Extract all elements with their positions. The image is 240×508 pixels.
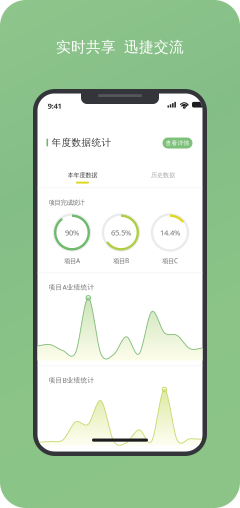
staticText: 本年度数据 [67,171,97,179]
staticText: 实时共享 迅捷交流 [56,38,184,56]
staticText: 项目C [162,256,178,265]
button[interactable]: 年度数据统计 [46,135,112,149]
staticText: 90% [65,227,79,238]
staticText: 年度数据统计 [52,136,112,149]
staticText: 项目B [113,256,129,265]
staticText: 14.4% [160,227,180,238]
staticText: 项目A [64,256,80,265]
staticText: 项目B业绩统计 [48,375,94,385]
staticText: 查看详情 [165,139,189,147]
staticText: 历史数据 [151,171,175,179]
button[interactable]: 本年度数据 [41,167,123,187]
staticText: 9:41 [47,100,61,111]
staticText: 项目A业绩统计 [48,282,94,292]
button[interactable]: 历史数据 [123,167,202,187]
button[interactable]: 查看详情 [162,137,192,148]
staticText: 项目完成统计 [48,198,84,207]
staticText: 65.5% [111,227,131,238]
